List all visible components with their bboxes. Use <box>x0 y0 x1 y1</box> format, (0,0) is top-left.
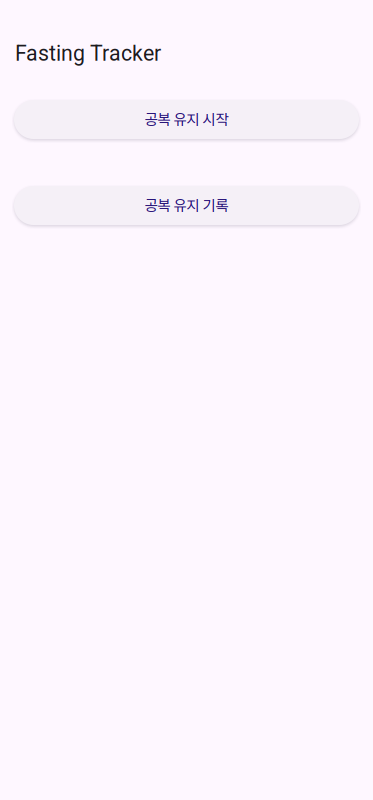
staticText: 공복 유지 시작 <box>144 108 228 129</box>
button[interactable]: 공복 유지 기록 <box>14 186 359 225</box>
staticText: Fasting Tracker <box>15 41 161 66</box>
staticText: 공복 유지 기록 <box>144 194 228 215</box>
button[interactable]: 공복 유지 시작 <box>14 100 359 139</box>
